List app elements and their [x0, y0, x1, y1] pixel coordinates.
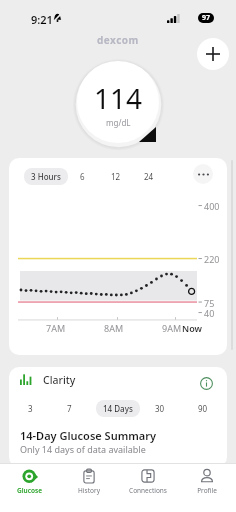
button[interactable]: 6 — [75, 168, 90, 185]
staticText: 75 — [204, 297, 215, 309]
staticText: dexcom — [97, 33, 139, 47]
staticText: 40 — [204, 307, 215, 319]
staticText: 3 — [28, 403, 33, 414]
button[interactable]: 90 — [193, 400, 213, 417]
staticText: Connections — [129, 486, 167, 495]
button[interactable]: 30 — [150, 400, 170, 417]
button[interactable]: Connections — [118, 464, 177, 512]
staticText: Glucose — [17, 486, 42, 495]
staticText: 14-Day Glucose Summary — [20, 428, 157, 443]
staticText: 24 — [144, 171, 154, 182]
staticText: 9:21 — [31, 12, 53, 27]
staticText: 6 — [80, 171, 85, 182]
staticText: 7 — [67, 403, 72, 414]
button[interactable]: More options — [193, 164, 213, 184]
staticText: 14 Days — [103, 403, 133, 414]
staticText: 114 — [94, 79, 143, 117]
button[interactable]: Clarity info — [198, 375, 215, 392]
button[interactable]: History — [59, 464, 118, 512]
staticText: 3 Hours — [31, 171, 61, 182]
button[interactable]: 3 Hours — [24, 168, 68, 185]
staticText: 9AM — [162, 322, 182, 334]
staticText: 8AM — [104, 322, 124, 334]
staticText: mg/dL — [106, 117, 131, 128]
staticText: 90 — [198, 403, 208, 414]
staticText: 30 — [155, 403, 165, 414]
button[interactable]: 3 — [23, 400, 38, 417]
staticText: 97 — [202, 13, 211, 23]
staticText: 220 — [204, 253, 220, 265]
staticText: Now — [182, 322, 202, 334]
button[interactable]: Profile — [177, 464, 236, 512]
staticText: History — [78, 486, 100, 495]
button[interactable]: 24 — [139, 168, 159, 185]
button[interactable]: 14 Days — [96, 400, 140, 417]
staticText: 7AM — [46, 322, 66, 334]
button[interactable]: 7 — [62, 400, 77, 417]
button[interactable]: 12 — [106, 168, 126, 185]
staticText: 12 — [111, 171, 121, 182]
staticText: Only 14 days of data available — [20, 443, 146, 455]
button[interactable]: Add event — [197, 38, 229, 70]
staticText: 400 — [204, 200, 220, 212]
staticText: Profile — [197, 486, 217, 495]
button[interactable]: Glucose — [0, 464, 59, 512]
staticText: Clarity — [43, 373, 76, 387]
